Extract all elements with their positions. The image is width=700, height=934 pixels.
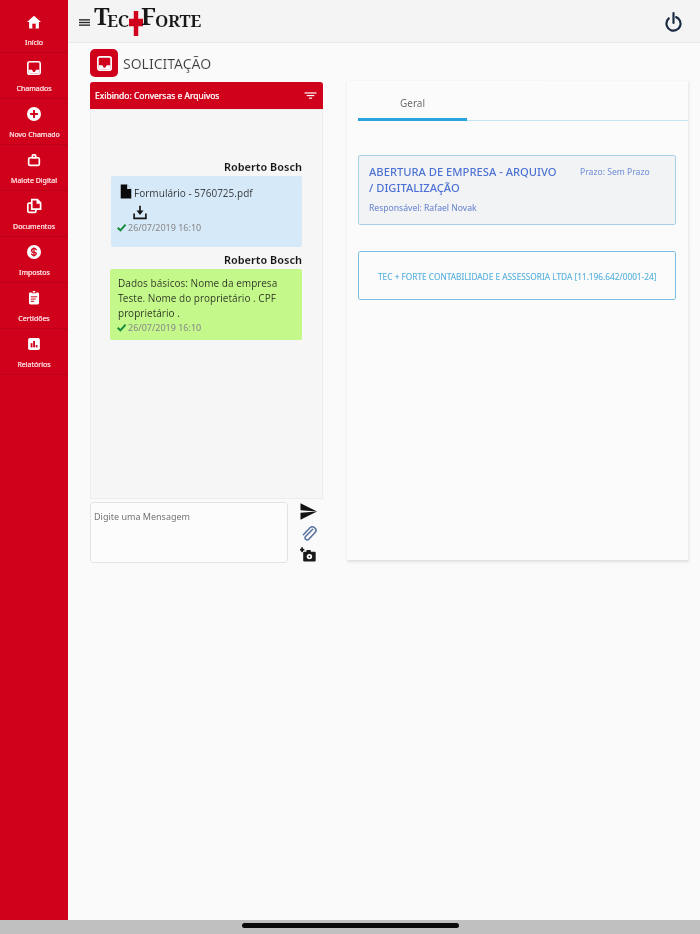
button[interactable]: Formulário - 5760725.pdf [111, 176, 302, 247]
staticText: Chamados [16, 84, 52, 94]
staticText: Responsável: Rafael Novak [369, 202, 477, 214]
button[interactable]: TEC + FORTE CONTABILIDADE E ASSESSORIA L… [358, 251, 676, 300]
button[interactable]: Início [0, 7, 68, 52]
staticText: EC [107, 9, 129, 32]
button[interactable]: Solicitação [90, 49, 118, 77]
button[interactable]: Malote Digital [0, 145, 68, 190]
staticText: 26/07/2019 16:10 [128, 221, 202, 233]
staticText: 26/07/2019 16:10 [128, 321, 202, 333]
staticText: T [94, 0, 109, 32]
staticText: Exibindo: Conversas e Arquivos [95, 90, 220, 102]
staticText: SOLICITAÇÃO [123, 54, 212, 73]
staticText: ABERTURA DE EMPRESA - ARQUIVO / DIGITALI… [369, 164, 557, 195]
staticText: Formulário - 5760725.pdf [134, 186, 253, 200]
staticText: Novo Chamado [9, 130, 60, 140]
staticText: Documentos [13, 222, 55, 232]
staticText: Início [25, 38, 43, 48]
button[interactable]: Digite uma Mensagem [90, 502, 288, 563]
staticText: ORTE [155, 9, 202, 32]
staticText: Digite uma Mensagem [94, 510, 190, 522]
button[interactable]: Exibindo: Conversas e Arquivos [90, 82, 323, 109]
staticText: Malote Digital [11, 176, 57, 186]
button[interactable]: Anexar arquivo [297, 522, 319, 544]
staticText: F [141, 0, 156, 32]
staticText: Impostos [19, 268, 50, 278]
staticText: TEC + FORTE CONTABILIDADE E ASSESSORIA L… [378, 271, 657, 282]
button[interactable]: ABERTURA DE EMPRESA - ARQUIVO / DIGITALI… [358, 155, 676, 225]
staticText: Geral [400, 96, 426, 110]
button[interactable]: Dados básicos: Nome da empresa Teste. No… [110, 269, 302, 340]
button[interactable]: Novo Chamado [0, 99, 68, 144]
button[interactable]: Sair [660, 9, 686, 35]
button[interactable]: Certidões [0, 283, 68, 328]
button[interactable]: Impostos [0, 237, 68, 282]
staticText: Roberto Bosch [90, 252, 302, 267]
staticText: Certidões [18, 314, 50, 324]
button[interactable]: Download [133, 205, 147, 219]
staticText: Relatórios [17, 360, 51, 370]
button[interactable]: Relatórios [0, 329, 68, 374]
staticText: Prazo: Sem Prazo [580, 166, 650, 178]
button[interactable]: Enviar [297, 500, 319, 522]
button[interactable]: Documentos [0, 191, 68, 236]
staticText: Dados básicos: Nome da empresa Teste. No… [118, 276, 298, 320]
button[interactable]: Chamados [0, 53, 68, 98]
button[interactable]: Camera [297, 544, 319, 566]
button[interactable]: Filtrar [303, 88, 318, 103]
button[interactable]: Geral [358, 81, 467, 121]
staticText: Roberto Bosch [90, 159, 302, 174]
button[interactable]: Menu [73, 11, 95, 33]
